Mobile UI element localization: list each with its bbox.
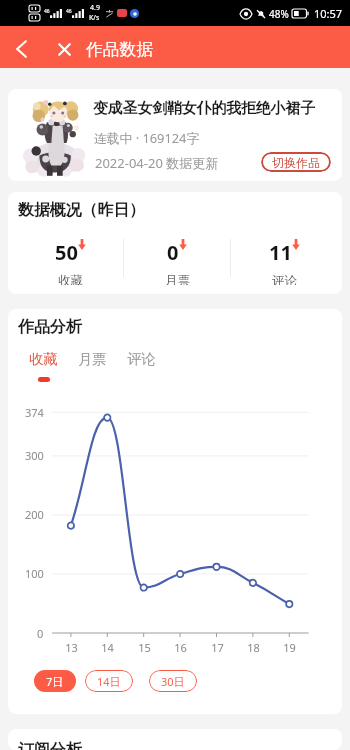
staticText: 18 bbox=[247, 640, 260, 655]
staticText: K/s bbox=[89, 13, 100, 23]
staticText: 15 bbox=[138, 640, 151, 655]
button[interactable]: 14日 bbox=[85, 670, 133, 692]
button[interactable]: 7日 bbox=[34, 670, 76, 692]
button[interactable]: Back bbox=[5, 26, 38, 68]
staticText: 200 bbox=[25, 507, 44, 522]
button[interactable]: 收藏 bbox=[29, 350, 58, 382]
staticText: 订阅分析 bbox=[18, 740, 82, 750]
staticText: 374 bbox=[25, 405, 44, 420]
staticText: 0 bbox=[167, 239, 179, 266]
staticText: 月票 bbox=[78, 350, 107, 368]
staticText: 连载中 · 169124字 bbox=[94, 129, 200, 146]
staticText: 30日 bbox=[161, 674, 185, 689]
staticText: 评论 bbox=[272, 273, 297, 285]
staticText: 7日 bbox=[46, 674, 64, 689]
button[interactable]: 50 bbox=[18, 239, 123, 285]
staticText: 14日 bbox=[97, 674, 121, 689]
staticText: 2022-04-20 数据更新 bbox=[95, 154, 219, 172]
staticText: 19 bbox=[283, 640, 296, 655]
staticText: 变成圣女剑鞘女仆的我拒绝小裙子 bbox=[93, 99, 315, 118]
staticText: 数据概况（昨日） bbox=[18, 200, 146, 220]
staticText: 收藏 bbox=[58, 273, 83, 285]
button[interactable]: 月票 bbox=[78, 350, 107, 377]
staticText: 48% bbox=[269, 7, 289, 21]
button[interactable]: 30日 bbox=[149, 670, 197, 692]
staticText: 月票 bbox=[165, 273, 190, 285]
staticText: 16 bbox=[174, 640, 187, 655]
button[interactable]: 11 bbox=[231, 239, 337, 285]
button[interactable]: 切换作品 bbox=[261, 152, 331, 172]
button[interactable]: 变成圣女剑鞘女仆的我拒绝小裙子 bbox=[8, 89, 342, 181]
staticText: 46 bbox=[66, 8, 72, 15]
button[interactable]: Close bbox=[44, 26, 85, 68]
staticText: 收藏 bbox=[29, 350, 58, 368]
staticText: 14 bbox=[101, 640, 114, 655]
staticText: 17 bbox=[211, 640, 224, 655]
staticText: 切换作品 bbox=[272, 155, 320, 170]
staticText: 作品分析 bbox=[18, 317, 82, 337]
staticText: 100 bbox=[25, 566, 44, 581]
staticText: 10:57 bbox=[314, 6, 343, 21]
staticText: 4.9 bbox=[90, 3, 100, 13]
staticText: 评论 bbox=[127, 350, 156, 368]
button[interactable]: 评论 bbox=[127, 350, 156, 377]
staticText: 0 bbox=[37, 626, 44, 641]
staticText: 13 bbox=[65, 640, 78, 655]
button[interactable]: 订阅分析 bbox=[8, 729, 342, 750]
button[interactable]: 0 bbox=[124, 239, 230, 285]
staticText: 300 bbox=[25, 448, 44, 463]
staticText: 46 bbox=[44, 8, 50, 15]
staticText: 50 bbox=[55, 239, 78, 266]
staticText: 作品数据 bbox=[86, 39, 154, 60]
staticText: 11 bbox=[269, 239, 292, 266]
